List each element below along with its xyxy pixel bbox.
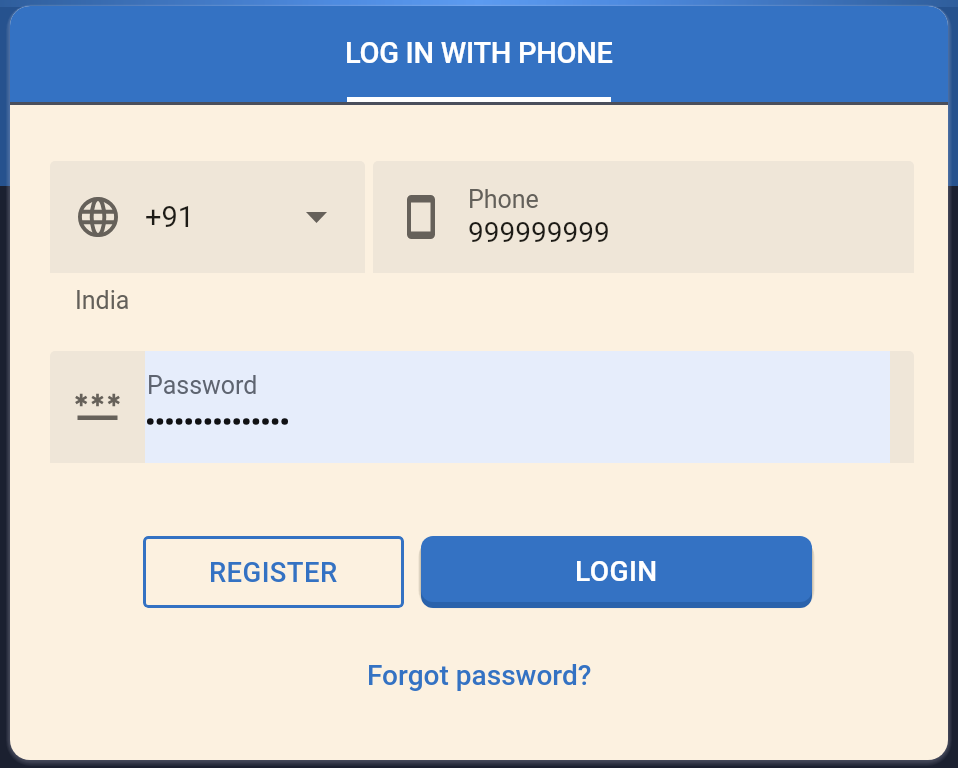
button[interactable]: REGISTER xyxy=(143,536,404,608)
staticText: LOGIN xyxy=(575,555,658,588)
staticText: India xyxy=(75,286,130,315)
staticText: +91 xyxy=(145,200,195,234)
staticText: Password xyxy=(147,371,258,400)
button[interactable]: Password xyxy=(50,351,914,463)
staticText: Forgot password? xyxy=(367,659,592,692)
other: Password xyxy=(75,394,120,420)
button[interactable]: Forgot password? xyxy=(359,655,600,696)
button[interactable]: Phone xyxy=(373,161,914,273)
staticText: LOG IN WITH PHONE xyxy=(345,36,613,70)
button[interactable]: Country xyxy=(50,161,365,273)
other: Country xyxy=(78,197,118,237)
staticText: REGISTER xyxy=(209,556,338,588)
staticText: 999999999 xyxy=(468,216,610,249)
button[interactable]: LOG IN WITH PHONE xyxy=(10,6,948,102)
button[interactable]: LOGIN xyxy=(421,536,812,602)
staticText: Phone xyxy=(468,185,539,214)
other: Phone xyxy=(407,195,435,239)
